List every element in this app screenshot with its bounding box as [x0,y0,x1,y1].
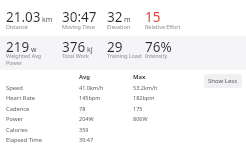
staticText: Heart Rate [6,94,79,102]
button[interactable]: Show Less [204,74,242,88]
staticText: 30:47 [62,8,97,26]
staticText: 53.2km/h [133,84,158,91]
staticText: 29 [107,38,123,56]
staticText: Show Less [208,77,238,85]
staticText: 359 [79,126,133,133]
staticText: Intensity [145,52,168,59]
staticText: 145bpm [79,94,133,101]
staticText: km [42,15,53,25]
staticText: 376 [62,38,86,56]
staticText: Training Load [107,52,142,59]
staticText: 32 [107,8,123,26]
staticText: 15 [145,8,161,26]
staticText: kJ [87,45,93,55]
staticText: Max [133,73,146,81]
staticText: Total Work [62,52,89,59]
staticText: Calories [6,126,79,134]
staticText: m [124,15,131,25]
staticText: 204W [79,115,133,122]
staticText: Relative Effort [145,23,181,30]
staticText: Moving Time [62,23,95,30]
staticText: 76% [145,38,172,56]
staticText: 30:47 [79,136,133,143]
staticText: Distance [6,23,28,30]
staticText: Weighted Avg Power [6,52,52,66]
staticText: 175 [133,105,143,112]
staticText: Elapsed Time [6,136,79,144]
staticText: Cadence [6,105,79,113]
staticText: Speed [6,84,79,92]
staticText: 182bpm [133,94,155,101]
staticText: 78 [79,105,133,112]
staticText: Avg [79,73,133,81]
staticText: 21.03 [6,8,41,26]
staticText: 41.0km/h [79,84,133,91]
staticText: w [31,45,37,55]
staticText: Power [6,115,79,123]
staticText: 219 [6,38,30,56]
staticText: Elevation [107,23,131,30]
staticText: 806W [133,115,148,122]
